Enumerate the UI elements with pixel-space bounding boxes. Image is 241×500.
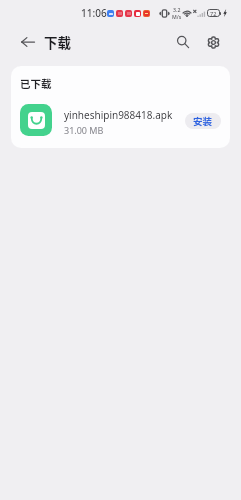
staticText: 安装: [193, 114, 213, 128]
staticText: 已下载: [20, 76, 52, 91]
button[interactable]: Back: [16, 30, 40, 54]
staticText: 下载: [44, 32, 71, 52]
button[interactable]: Settings: [200, 29, 226, 55]
button[interactable]: 安装: [185, 113, 221, 129]
staticText: M/s: [172, 13, 182, 20]
staticText: 31.00 MB: [64, 124, 104, 136]
staticText: 11:06: [81, 6, 107, 20]
staticText: 72: [210, 10, 217, 17]
button[interactable]: Search: [170, 29, 196, 55]
staticText: yinheshipin988418.apk: [64, 108, 173, 122]
staticText: 3.2: [173, 6, 181, 13]
